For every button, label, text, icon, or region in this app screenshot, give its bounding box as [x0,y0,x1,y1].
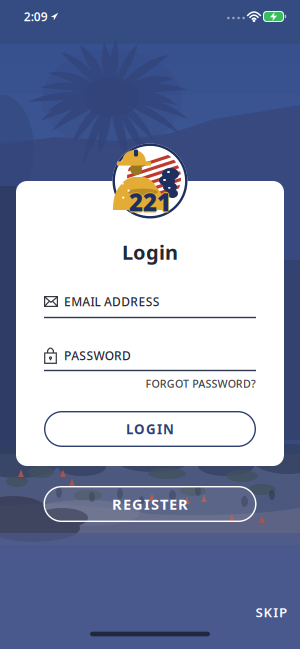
staticText: 2:09 [24,8,48,24]
button[interactable]: LOGIN [44,411,256,447]
staticText: PASSWORD [64,347,131,363]
staticText: 221 [129,187,171,219]
button[interactable]: FORGOT PASSWORD? [44,376,256,390]
staticText: 221 [129,185,171,217]
staticText: SKIP [256,603,287,621]
staticText: 221 [129,186,171,218]
button[interactable]: REGISTER [43,486,256,522]
staticText: EMAIL ADDRESS [64,293,160,309]
staticText: Login [122,239,178,265]
staticText: 221 [130,186,172,218]
staticText: REGISTER [112,494,188,514]
staticText: 221 [128,186,170,218]
staticText: FORGOT PASSWORD? [145,376,256,391]
staticText: LOGIN [126,420,174,438]
button[interactable]: SKIP [207,604,287,620]
